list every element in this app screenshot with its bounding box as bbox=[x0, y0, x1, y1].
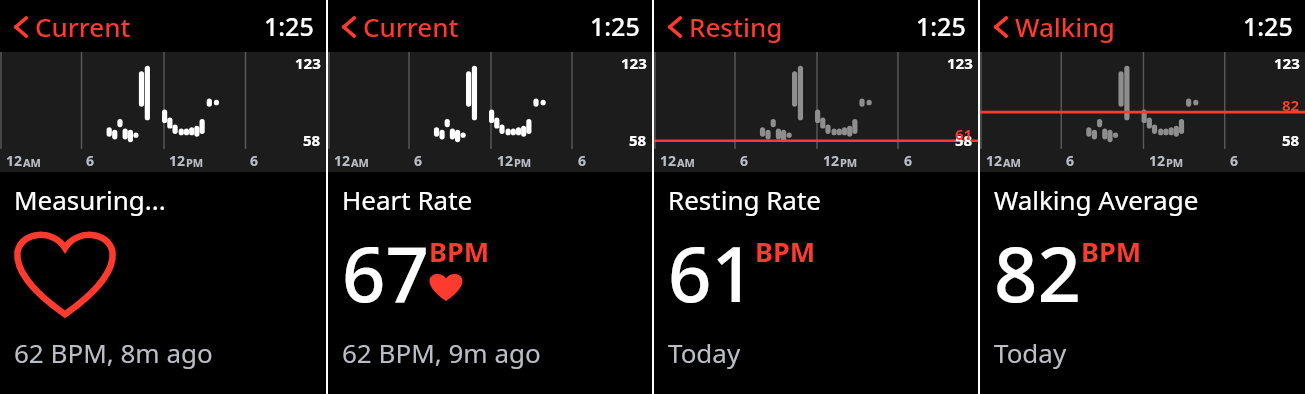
staticText: 58 bbox=[955, 130, 973, 150]
staticText: Walking bbox=[1015, 9, 1115, 44]
staticText: Measuring... bbox=[14, 182, 166, 217]
button[interactable]: Back bbox=[654, 0, 978, 52]
staticText: BPM bbox=[1081, 233, 1142, 270]
staticText: Walking Average bbox=[994, 182, 1199, 217]
staticText: PM bbox=[186, 155, 204, 170]
staticText: 6 bbox=[904, 151, 913, 170]
staticText: 58 bbox=[629, 130, 647, 150]
staticText: 58 bbox=[1282, 130, 1300, 150]
staticText: Current bbox=[363, 9, 459, 44]
other: Back bbox=[668, 15, 682, 39]
staticText: Heart Rate bbox=[342, 182, 473, 217]
staticText: AM bbox=[677, 155, 695, 170]
staticText: 123 bbox=[621, 53, 647, 73]
staticText: PM bbox=[1166, 155, 1184, 170]
staticText: 12 bbox=[497, 151, 514, 170]
button[interactable]: Back bbox=[980, 0, 1305, 52]
staticText: 12 bbox=[169, 151, 186, 170]
staticText: PM bbox=[514, 155, 532, 170]
staticText: 12 bbox=[6, 151, 23, 170]
staticText: 6 bbox=[740, 151, 749, 170]
staticText: 12 bbox=[334, 151, 351, 170]
staticText: 62 BPM, 8m ago bbox=[14, 335, 213, 370]
staticText: 123 bbox=[295, 53, 321, 73]
staticText: 12 bbox=[986, 151, 1003, 170]
staticText: 12 bbox=[823, 151, 840, 170]
staticText: 1:25 bbox=[590, 9, 640, 43]
staticText: 123 bbox=[1274, 53, 1300, 73]
staticText: 1:25 bbox=[916, 9, 966, 43]
staticText: Current bbox=[35, 9, 131, 44]
staticText: Resting Rate bbox=[668, 182, 822, 217]
button[interactable]: Back bbox=[328, 0, 652, 52]
staticText: 6 bbox=[578, 151, 587, 170]
staticText: 12 bbox=[1149, 151, 1166, 170]
staticText: 82 bbox=[1282, 95, 1300, 115]
staticText: 58 bbox=[303, 130, 321, 150]
other: Back bbox=[14, 15, 28, 39]
staticText: 6 bbox=[250, 151, 259, 170]
staticText: 6 bbox=[1066, 151, 1075, 170]
staticText: 6 bbox=[1230, 151, 1239, 170]
staticText: 67 bbox=[342, 221, 429, 325]
staticText: 12 bbox=[660, 151, 677, 170]
button[interactable]: Back bbox=[0, 0, 326, 52]
staticText: 1:25 bbox=[1243, 9, 1293, 43]
other: Back bbox=[342, 15, 356, 39]
staticText: 61 bbox=[955, 124, 973, 144]
staticText: AM bbox=[23, 155, 41, 170]
staticText: 62 BPM, 9m ago bbox=[342, 335, 541, 370]
staticText: AM bbox=[1003, 155, 1021, 170]
staticText: BPM bbox=[429, 233, 490, 270]
staticText: PM bbox=[840, 155, 858, 170]
staticText: Today bbox=[994, 335, 1067, 370]
staticText: 1:25 bbox=[264, 9, 314, 43]
staticText: 82 bbox=[994, 221, 1081, 325]
staticText: Resting bbox=[689, 9, 783, 44]
staticText: BPM bbox=[755, 233, 816, 270]
other: Back bbox=[994, 15, 1008, 39]
staticText: 61 bbox=[668, 221, 755, 325]
staticText: 6 bbox=[414, 151, 423, 170]
staticText: Today bbox=[668, 335, 741, 370]
staticText: 6 bbox=[86, 151, 95, 170]
staticText: AM bbox=[351, 155, 369, 170]
staticText: 123 bbox=[947, 53, 973, 73]
